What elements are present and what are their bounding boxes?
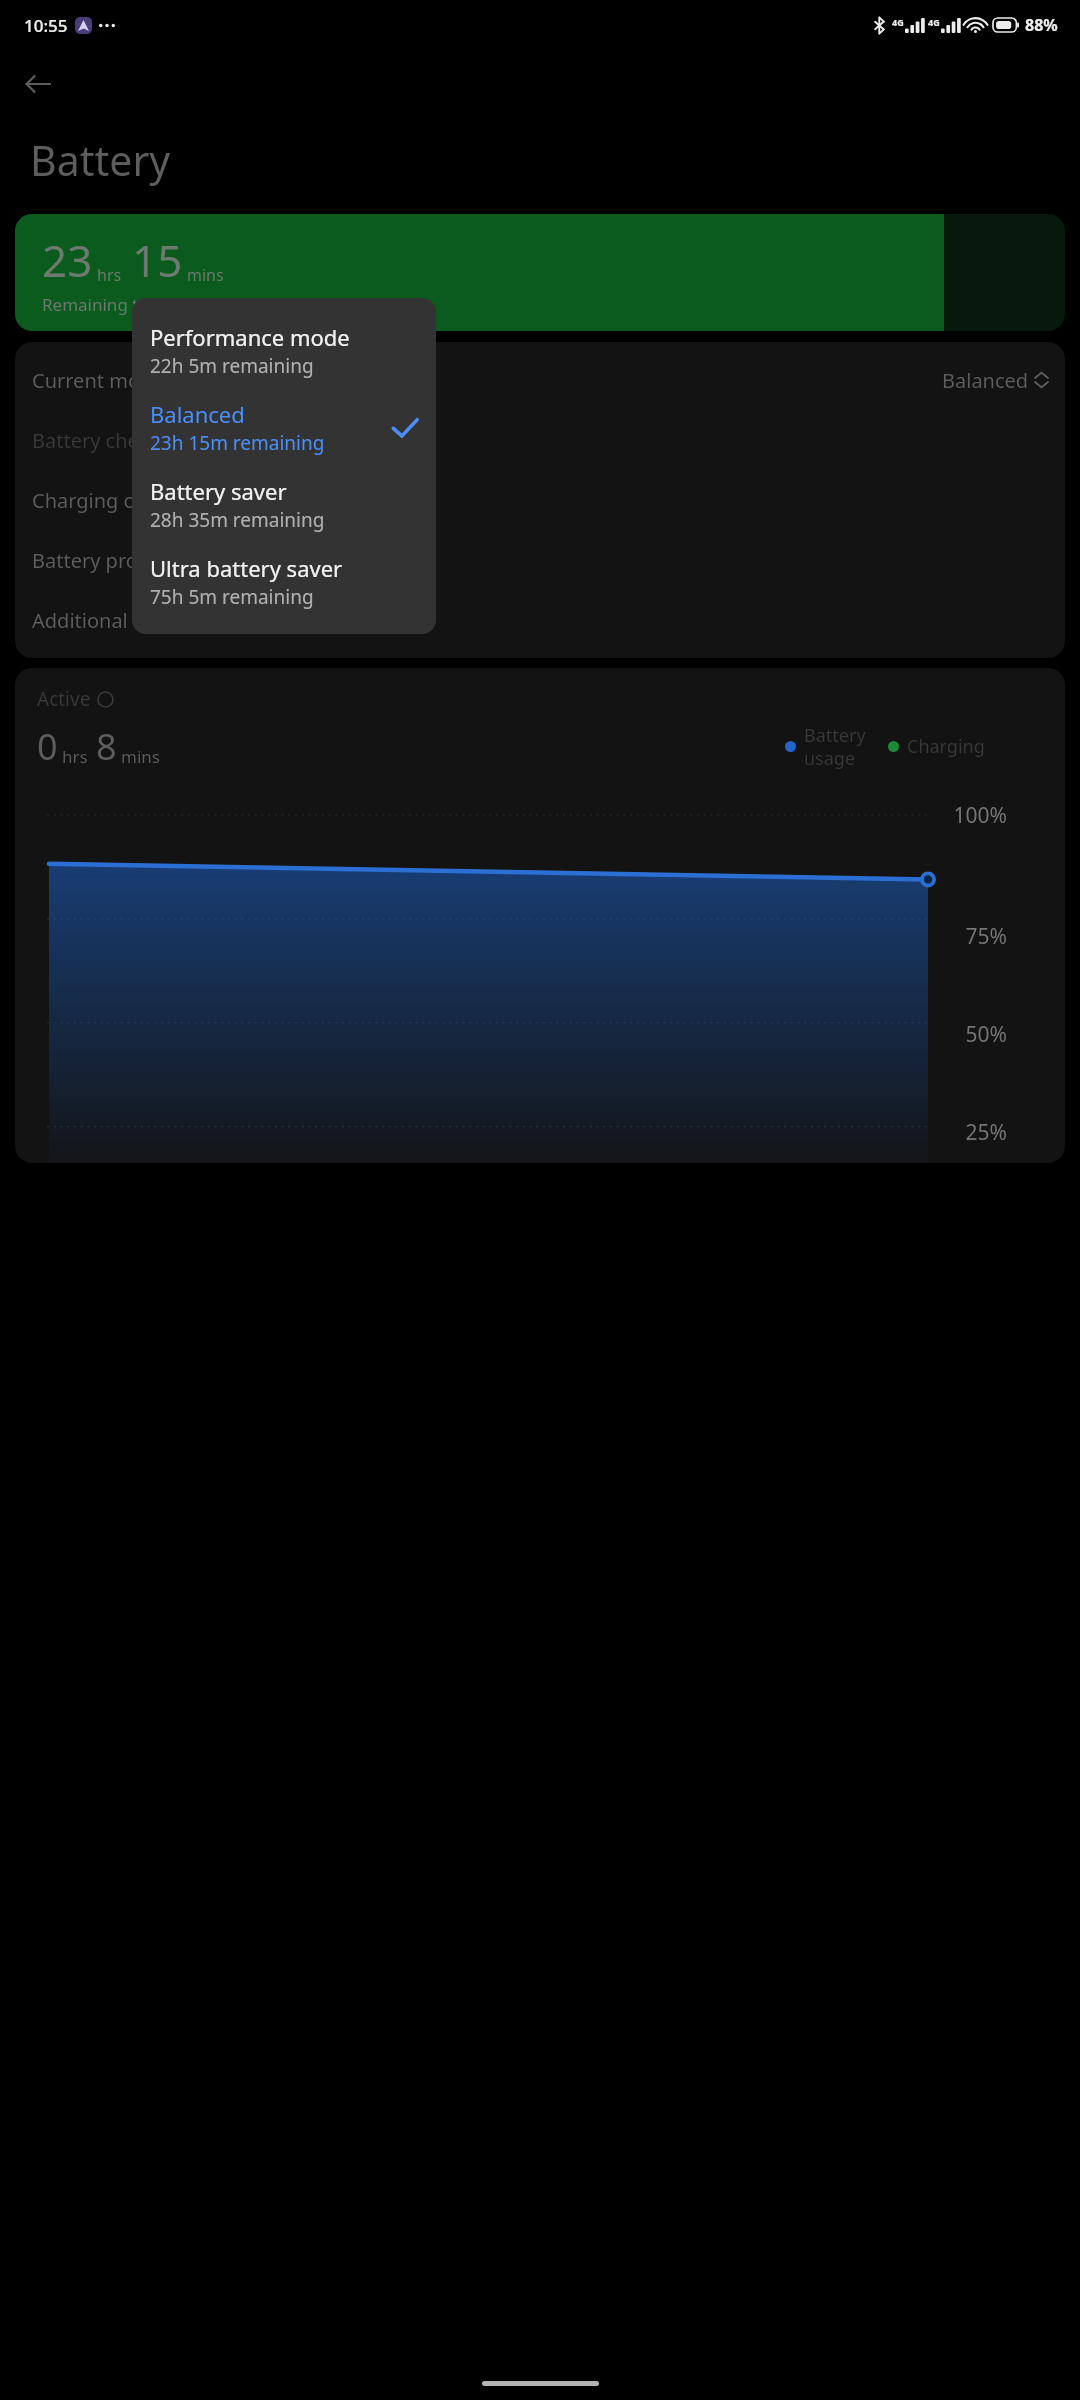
button[interactable]: 23	[15, 214, 1065, 331]
staticText: 75h 5m remaining	[150, 584, 314, 610]
button[interactable]: Balanced	[132, 389, 436, 466]
staticText: Active	[37, 686, 91, 712]
staticText: Battery check-up	[32, 427, 191, 454]
button[interactable]: Back	[14, 60, 62, 108]
staticText: Battery protection	[32, 547, 203, 574]
button[interactable]: Performance mode	[132, 312, 436, 389]
staticText: mins	[121, 745, 160, 768]
staticText: hrs	[97, 264, 122, 286]
staticText: hrs	[62, 745, 88, 768]
staticText: 22h 5m remaining	[150, 353, 314, 379]
staticText: 28h 35m remaining	[150, 507, 325, 533]
staticText: Battery saver	[150, 476, 287, 506]
staticText: Charging options	[32, 487, 195, 514]
staticText: Balanced	[942, 367, 1029, 394]
staticText: 50%	[965, 1020, 1007, 1049]
staticText: Remaining time | 88% charged	[42, 293, 291, 316]
staticText: 4G	[892, 16, 904, 28]
button[interactable]: Current mode	[15, 350, 1065, 410]
button[interactable]: Battery check-up	[15, 410, 1065, 470]
button[interactable]: Charging options	[15, 470, 1065, 530]
button[interactable]: Battery saver	[132, 466, 436, 543]
staticText: 23h 15m remaining	[150, 430, 325, 456]
staticText: Battery	[30, 132, 171, 188]
staticText: 0	[37, 722, 58, 771]
staticText: 100%	[953, 801, 1007, 830]
staticText: mins	[187, 264, 224, 286]
button[interactable]: Additional features	[15, 590, 1065, 650]
staticText: Additional features	[32, 607, 211, 634]
staticText: Balanced	[150, 399, 245, 429]
staticText: 75%	[965, 922, 1007, 951]
staticText: 10:55	[24, 14, 68, 37]
staticText: Current mode	[32, 367, 164, 394]
staticText: 88%	[1025, 14, 1058, 36]
staticText: Battery usage	[804, 723, 866, 770]
staticText: 25%	[965, 1118, 1007, 1147]
staticText: Performance mode	[150, 322, 350, 352]
staticText: 4G	[928, 16, 940, 28]
staticText: Ultra battery saver	[150, 553, 343, 583]
button[interactable]: Ultra battery saver	[132, 543, 436, 620]
staticText: 15	[132, 230, 183, 290]
staticText: 8	[96, 722, 117, 771]
staticText: 23	[42, 230, 93, 290]
button[interactable]: Battery protection	[15, 530, 1065, 590]
staticText: Charging	[907, 734, 985, 759]
